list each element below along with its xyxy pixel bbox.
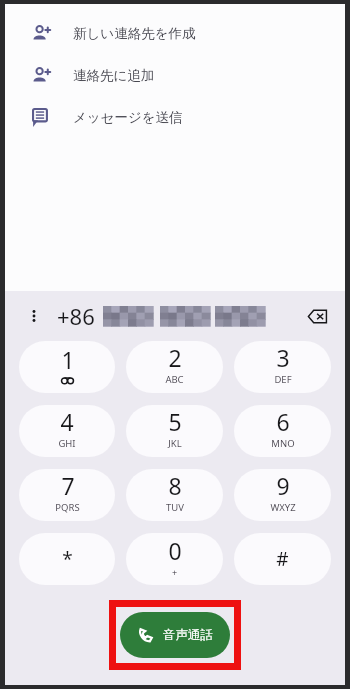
button[interactable]: 5 [126, 405, 223, 457]
button[interactable]: 連絡先に追加 [5, 54, 345, 96]
button[interactable]: 1 [19, 341, 115, 393]
staticText: # [276, 546, 289, 572]
staticText: PQRS [55, 501, 80, 514]
staticText: DEF [274, 373, 292, 386]
staticText: メッセージを送信 [73, 109, 183, 126]
staticText: 連絡先に追加 [73, 67, 155, 84]
button[interactable]: メッセージを送信 [5, 96, 345, 138]
button[interactable]: 7 [19, 469, 115, 521]
button[interactable]: 0 [126, 533, 223, 585]
staticText: TUV [166, 501, 184, 514]
staticText: JKL [168, 437, 182, 450]
staticText: 新しい連絡先を作成 [73, 25, 196, 42]
button[interactable]: More options [21, 303, 47, 329]
staticText: 4 [60, 406, 74, 437]
staticText: 9 [276, 470, 290, 501]
staticText: 1 [61, 344, 75, 375]
staticText: * [62, 546, 73, 572]
button[interactable]: 音声通話 [120, 612, 230, 658]
staticText: + [172, 566, 178, 578]
staticText: 2 [168, 342, 182, 373]
button[interactable]: 3 [234, 341, 331, 393]
staticText: WXYZ [270, 501, 296, 514]
button[interactable]: 新しい連絡先を作成 [5, 12, 345, 54]
staticText: 5 [168, 406, 182, 437]
button[interactable]: 4 [19, 405, 115, 457]
staticText: ABC [165, 373, 184, 386]
staticText: GHI [58, 437, 76, 450]
staticText: 6 [276, 406, 290, 437]
button[interactable]: 8 [126, 469, 223, 521]
button[interactable]: 9 [234, 469, 331, 521]
staticText: 7 [61, 470, 75, 501]
button[interactable]: 2 [126, 341, 223, 393]
button[interactable]: # [234, 533, 331, 585]
staticText: 0 [168, 535, 182, 566]
staticText: MNO [271, 437, 295, 450]
staticText: +86 [57, 301, 95, 331]
staticText: 8 [168, 470, 182, 501]
staticText: 音声通話 [163, 627, 213, 643]
button[interactable]: * [19, 533, 115, 585]
staticText: 3 [276, 342, 290, 373]
button[interactable]: Backspace [302, 301, 332, 331]
button[interactable]: 6 [234, 405, 331, 457]
